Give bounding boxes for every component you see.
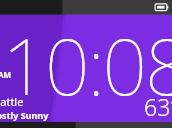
button[interactable]: Battery status — [153, 2, 169, 13]
staticText: Mostly Sunny — [0, 109, 49, 121]
staticText: 10:08 — [2, 12, 172, 118]
staticText: Seattle — [0, 94, 24, 109]
button[interactable]: Seattle — [0, 94, 49, 121]
staticText: 63° — [144, 91, 172, 122]
button[interactable]: 10:08 — [0, 0, 172, 128]
button[interactable]: 63° — [144, 91, 172, 122]
staticText: AM — [0, 69, 12, 80]
